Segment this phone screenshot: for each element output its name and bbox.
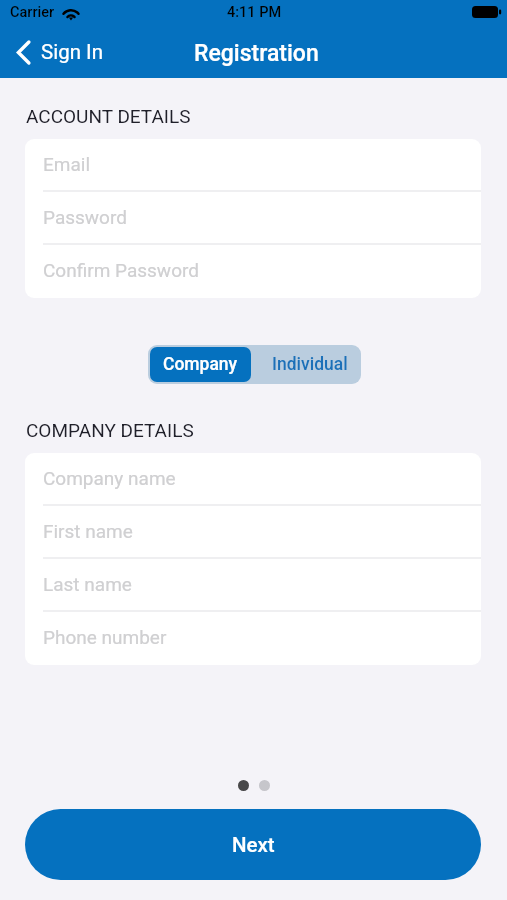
- staticText: Last name: [43, 573, 132, 595]
- button[interactable]: Page 2 of 2: [259, 780, 270, 791]
- staticText: ACCOUNT DETAILS: [26, 105, 191, 127]
- staticText: Password: [43, 206, 127, 228]
- staticText: Carrier: [10, 4, 55, 21]
- button[interactable]: Page 1 of 2, current page: [238, 780, 249, 791]
- staticText: Confirm Password: [43, 259, 199, 281]
- button[interactable]: Password: [25, 192, 481, 245]
- staticText: Registration: [194, 40, 319, 67]
- button[interactable]: Next: [25, 809, 481, 880]
- button[interactable]: Last name: [25, 559, 481, 612]
- staticText: First name: [43, 520, 133, 542]
- button[interactable]: Confirm Password: [25, 245, 481, 298]
- staticText: COMPANY DETAILS: [26, 419, 194, 441]
- staticText: Company: [163, 354, 238, 375]
- staticText: Next: [232, 833, 275, 857]
- button[interactable]: Back to Sign In: [10, 32, 111, 72]
- staticText: Phone number: [43, 626, 167, 648]
- button[interactable]: Individual: [253, 345, 361, 384]
- button[interactable]: Company name: [25, 453, 481, 506]
- staticText: 4:11 PM: [227, 4, 282, 21]
- staticText: Sign In: [41, 40, 103, 64]
- button[interactable]: Email: [25, 139, 481, 192]
- button[interactable]: Phone number: [25, 612, 481, 665]
- button[interactable]: Company: [150, 347, 251, 382]
- staticText: Email: [43, 153, 91, 175]
- button[interactable]: First name: [25, 506, 481, 559]
- staticText: Company name: [43, 467, 176, 489]
- staticText: Individual: [272, 354, 348, 375]
